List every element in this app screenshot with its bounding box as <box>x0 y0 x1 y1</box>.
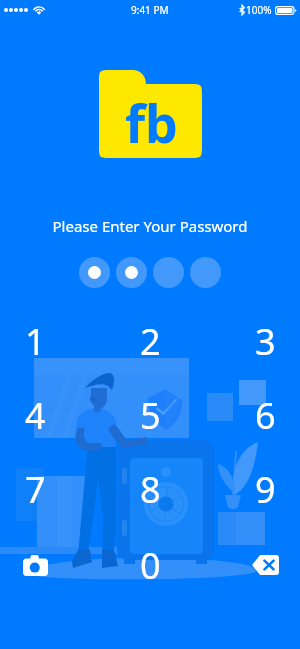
staticText: 4 <box>25 391 46 440</box>
staticText: Please Enter Your Password <box>0 216 300 236</box>
staticText: fb <box>125 87 178 158</box>
button[interactable]: Backspace <box>230 528 300 602</box>
button[interactable]: 1 <box>0 304 70 378</box>
staticText: 3 <box>255 317 276 366</box>
button[interactable]: 6 <box>230 378 300 452</box>
staticText: 9 <box>255 465 276 514</box>
button[interactable]: 5 <box>70 378 230 452</box>
button[interactable]: 4 <box>0 378 70 452</box>
button[interactable]: 9 <box>230 452 300 526</box>
button[interactable]: 8 <box>70 452 230 526</box>
button[interactable]: 0 <box>70 528 230 602</box>
staticText: 2 <box>140 317 161 366</box>
staticText: 6 <box>255 391 276 440</box>
staticText: 1 <box>25 317 46 366</box>
button[interactable]: 7 <box>0 452 70 526</box>
staticText: 100% <box>246 3 272 17</box>
staticText: 7 <box>25 465 46 514</box>
staticText: 9:41 PM <box>131 3 169 17</box>
staticText: 5 <box>140 391 161 440</box>
staticText: 0 <box>140 541 161 590</box>
button[interactable]: Camera <box>0 528 70 602</box>
button[interactable]: 3 <box>230 304 300 378</box>
staticText: 8 <box>140 465 161 514</box>
button[interactable]: 2 <box>70 304 230 378</box>
